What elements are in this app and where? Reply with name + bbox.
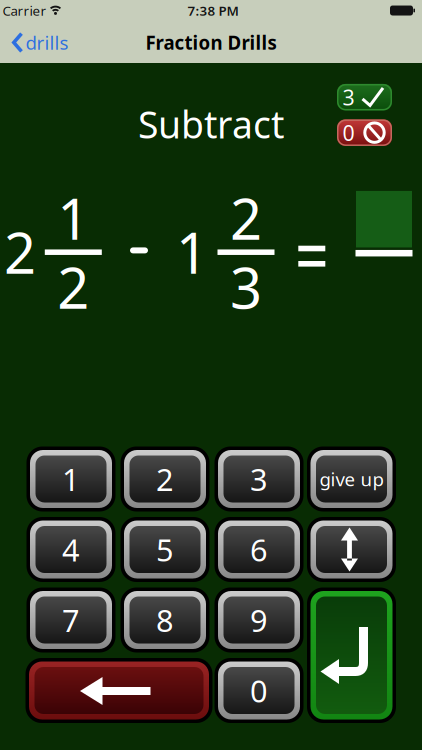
staticText: 0 <box>342 118 354 147</box>
staticText: 3 <box>230 250 262 324</box>
button[interactable]: 1 <box>26 446 115 511</box>
staticText: 5 <box>156 529 174 570</box>
button[interactable] <box>307 517 396 582</box>
staticText: 3 <box>250 459 268 499</box>
button[interactable]: give up <box>307 446 396 511</box>
button[interactable] <box>25 658 212 723</box>
staticText: 0 <box>250 670 268 711</box>
staticText: Subtract <box>138 99 284 149</box>
staticText: 6 <box>250 529 268 570</box>
staticText: 2 <box>4 215 36 289</box>
staticText: 9 <box>250 600 268 640</box>
button[interactable]: 4 <box>26 517 115 582</box>
button[interactable] <box>307 587 396 723</box>
button[interactable]: 3 <box>214 446 303 511</box>
staticText: drills <box>25 30 68 55</box>
staticText: 1 <box>176 215 208 289</box>
staticText: 7:38 PM <box>187 2 238 19</box>
button[interactable]: 7 <box>26 587 115 652</box>
button[interactable]: 8 <box>120 587 209 652</box>
staticText: 1 <box>62 459 80 499</box>
staticText: 2 <box>230 181 262 255</box>
staticText: 2 <box>57 250 89 324</box>
staticText: 4 <box>62 529 80 570</box>
staticText: Fraction Drills <box>145 30 276 55</box>
button[interactable]: 2 <box>120 446 209 511</box>
staticText: give up <box>319 467 383 491</box>
staticText: 8 <box>156 600 174 640</box>
button[interactable]: 9 <box>214 587 303 652</box>
button[interactable]: drills <box>0 22 80 63</box>
staticText: Carrier <box>2 2 46 19</box>
staticText: 7 <box>62 600 80 640</box>
staticText: 1 <box>57 181 89 255</box>
button[interactable]: 0 <box>214 658 303 723</box>
button[interactable]: 5 <box>120 517 209 582</box>
button[interactable]: 6 <box>214 517 303 582</box>
staticText: 3 <box>342 83 354 111</box>
staticText: 2 <box>156 459 174 499</box>
